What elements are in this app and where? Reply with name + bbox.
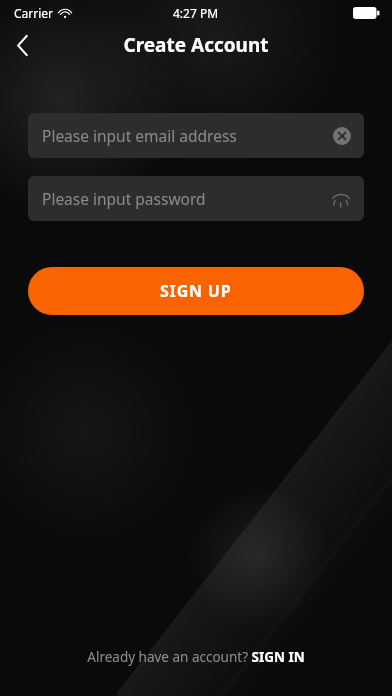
staticText: Create Account [123, 32, 269, 58]
button[interactable]: Already have an account? SIGN IN [79, 644, 313, 670]
staticText: Carrier [14, 5, 54, 21]
button[interactable]: Back [0, 25, 44, 65]
staticText: Please input password [42, 188, 330, 209]
staticText: Please input email address [42, 125, 333, 146]
staticText: Already have an account? SIGN IN [87, 648, 305, 666]
button[interactable]: Clear email [333, 127, 351, 145]
button[interactable]: SIGN UP [28, 267, 364, 315]
staticText: SIGN UP [160, 280, 232, 302]
button[interactable]: Please input password [28, 176, 364, 221]
button[interactable]: Show password [330, 191, 352, 207]
staticText: 4:27 PM [173, 5, 219, 21]
button[interactable]: Please input email address [28, 113, 364, 158]
